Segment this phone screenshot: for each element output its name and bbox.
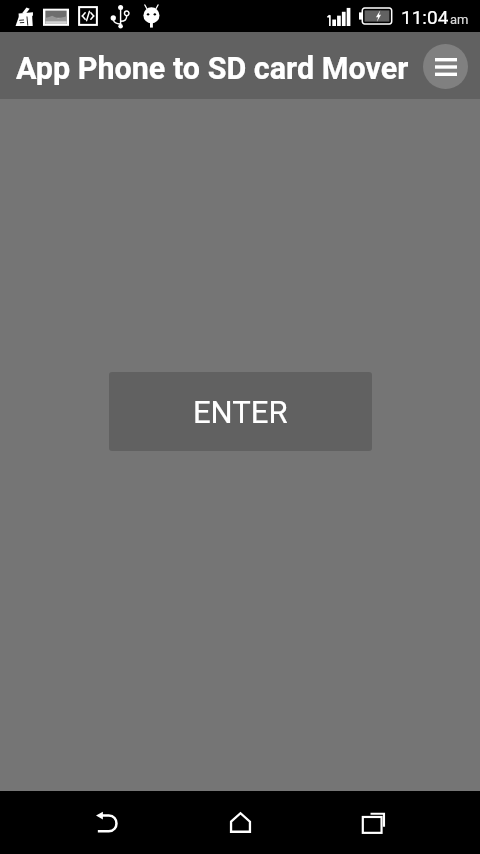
button[interactable]: Home [200,791,280,854]
button[interactable]: Recent apps [333,791,413,854]
button[interactable]: ENTER [109,372,372,451]
button[interactable]: Menu [423,44,468,89]
staticText: ENTER [193,394,288,430]
staticText: am [450,12,469,27]
button[interactable]: Back [67,791,147,854]
staticText: App Phone to SD card Mover [16,51,409,87]
staticText: 11:04 [401,6,449,28]
